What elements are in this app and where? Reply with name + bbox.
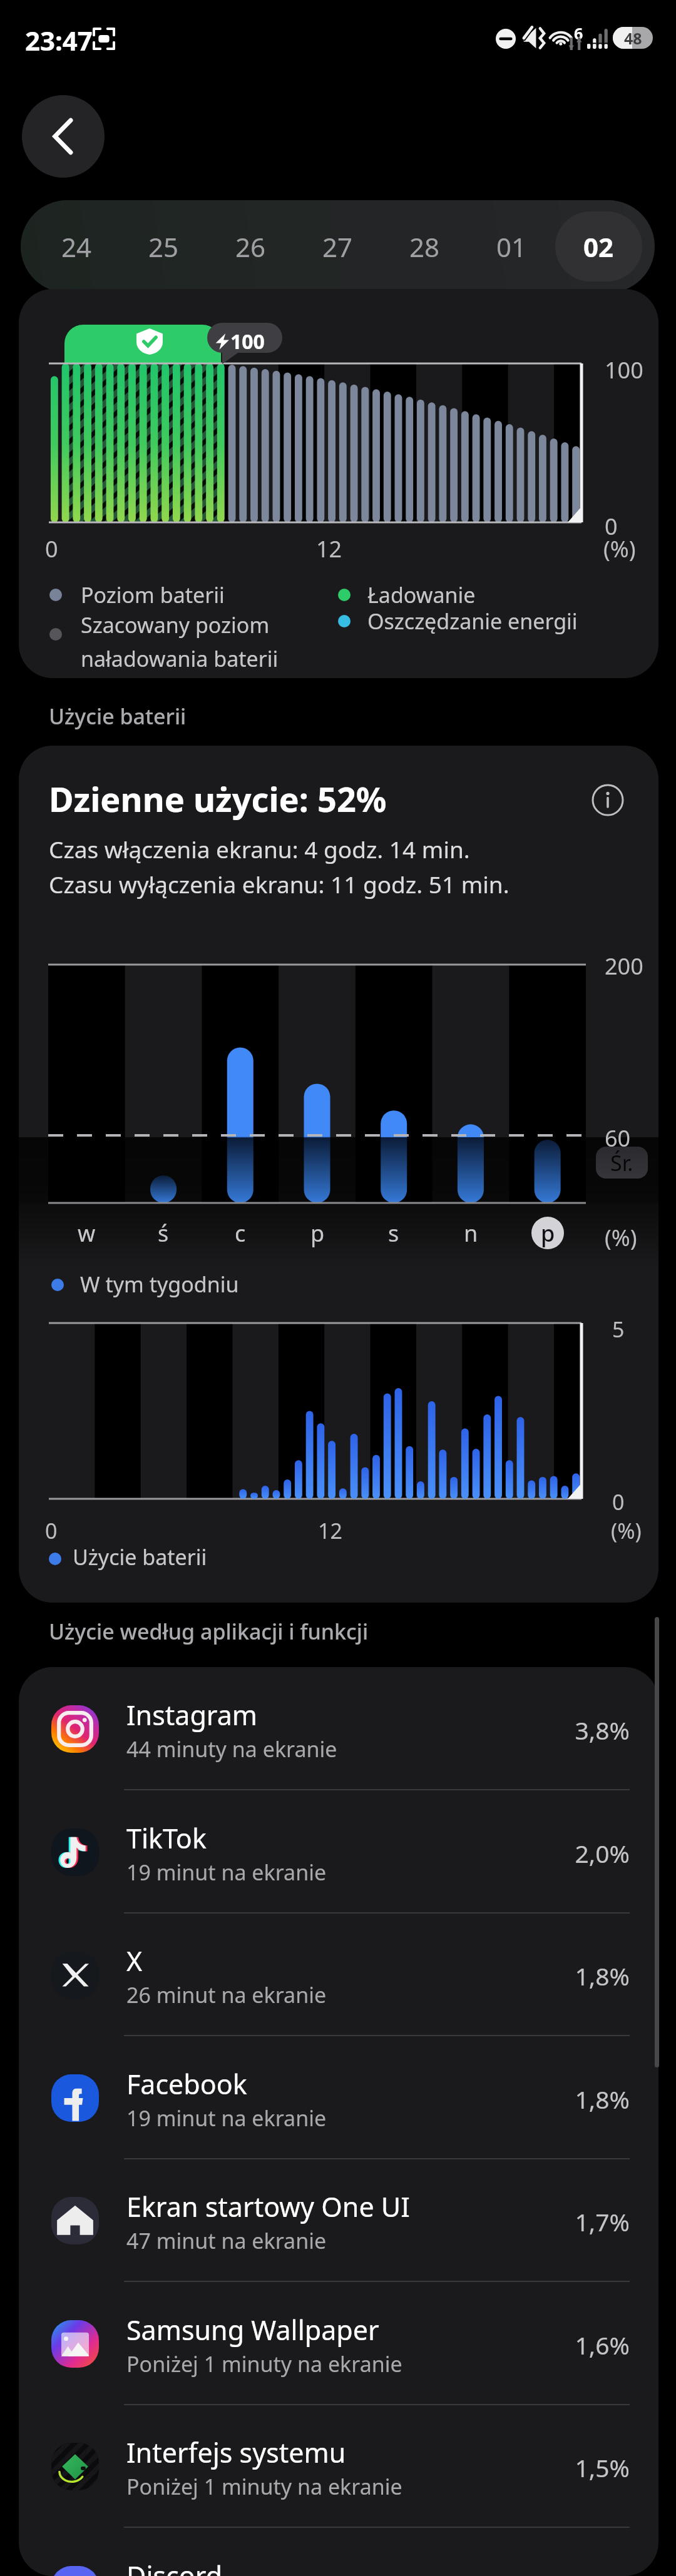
button[interactable]: 26 xyxy=(207,211,294,281)
button[interactable]: 24 xyxy=(33,211,120,281)
staticText: Oszczędzanie energii xyxy=(367,607,578,636)
button[interactable]: 25 xyxy=(120,211,207,281)
staticText: X xyxy=(126,1942,143,1979)
staticText: 1,7% xyxy=(513,2205,630,2238)
staticText: 28 xyxy=(409,229,440,265)
button[interactable]: Ekran startowy One UI xyxy=(19,2159,658,2282)
staticText: w xyxy=(78,1218,96,1249)
staticText: 100 xyxy=(605,355,643,385)
staticText: 01 xyxy=(496,229,527,265)
staticText: 0 xyxy=(612,1488,625,1516)
staticText: 25 xyxy=(148,229,179,265)
staticText: ś xyxy=(158,1218,169,1249)
staticText: Czas włączenia ekranu: 4 godz. 14 min. xyxy=(49,833,470,865)
staticText: 3,8% xyxy=(513,1713,630,1747)
button[interactable]: 28 xyxy=(381,211,468,281)
staticText: W tym tygodniu xyxy=(80,1270,239,1299)
staticText: p xyxy=(541,1218,555,1249)
staticText: 5 xyxy=(612,1315,625,1344)
staticText: Poniżej 1 minuty na ekranie xyxy=(126,2472,402,2501)
staticText: Discord xyxy=(126,2557,223,2576)
staticText: Instagram xyxy=(126,1696,258,1733)
staticText: 27 xyxy=(322,229,353,265)
button[interactable]: Interfejs systemu xyxy=(19,2405,658,2528)
button[interactable]: TikTok xyxy=(19,1790,658,1914)
staticText: TikTok xyxy=(126,1820,207,1857)
staticText: 12 xyxy=(316,534,342,564)
staticText: 19 minut na ekranie xyxy=(126,1858,327,1887)
staticText: Poziom baterii xyxy=(81,581,225,609)
staticText: Poniżej 1 minuty na ekranie xyxy=(126,2350,402,2378)
button[interactable]: 01 xyxy=(468,211,555,281)
staticText: (%) xyxy=(603,534,636,564)
button[interactable]: Wstecz xyxy=(22,95,105,178)
staticText: 1,6% xyxy=(513,2328,630,2361)
staticText: 0 xyxy=(45,1516,58,1545)
staticText: 0 xyxy=(45,534,58,564)
staticText: 24 xyxy=(61,229,92,265)
button[interactable]: Samsung Wallpaper xyxy=(19,2282,658,2405)
staticText: Użycie baterii xyxy=(73,1543,207,1571)
button[interactable]: Discord xyxy=(19,2528,658,2576)
staticText: 12 xyxy=(318,1516,342,1545)
staticText: 2,0% xyxy=(513,1837,630,1870)
staticText: s xyxy=(388,1218,399,1249)
staticText: Czasu wyłączenia ekranu: 11 godz. 51 min… xyxy=(49,868,510,900)
staticText: 47 minut na ekranie xyxy=(126,2226,327,2255)
staticText: 6 xyxy=(574,23,583,44)
staticText: Facebook xyxy=(126,2066,247,2102)
staticText: 1,8% xyxy=(513,2082,630,2116)
staticText: Interfejs systemu xyxy=(126,2434,346,2471)
button[interactable]: Informacje xyxy=(587,779,628,821)
staticText: (%) xyxy=(611,1516,642,1545)
staticText: n xyxy=(464,1218,478,1249)
staticText: c xyxy=(235,1218,246,1249)
button[interactable]: X xyxy=(19,1913,658,2036)
button[interactable]: 27 xyxy=(294,211,381,281)
staticText: Użycie według aplikacji i funkcji xyxy=(49,1617,369,1646)
staticText: 19 minut na ekranie xyxy=(126,2104,327,2132)
staticText: 26 minut na ekranie xyxy=(126,1980,327,2009)
staticText: 200 xyxy=(605,951,643,981)
staticText: Dzienne użycie: 52% xyxy=(49,776,387,822)
staticText: 1,8% xyxy=(513,1959,630,1992)
staticText: 100 xyxy=(230,328,265,355)
staticText: 0 xyxy=(605,511,618,542)
staticText: Ładowanie xyxy=(367,581,476,609)
staticText: 1,5% xyxy=(513,2451,630,2484)
staticText: Szacowany poziom naładowania baterii xyxy=(81,611,279,673)
staticText: 23:47 xyxy=(25,23,93,58)
staticText: Śr. xyxy=(610,1149,633,1177)
staticText: Użycie baterii xyxy=(49,702,187,731)
staticText: 26 xyxy=(235,229,266,265)
staticText: 02 xyxy=(583,229,614,265)
staticText: 48 xyxy=(624,28,642,49)
staticText: Ekran startowy One UI xyxy=(126,2188,410,2225)
button[interactable]: Instagram xyxy=(19,1667,658,1790)
button[interactable]: Facebook xyxy=(19,2036,658,2159)
button[interactable]: p xyxy=(531,1217,564,1249)
staticText: (%) xyxy=(605,1222,637,1253)
staticText: 60 xyxy=(605,1123,631,1154)
button[interactable]: 02 xyxy=(555,211,642,281)
staticText: p xyxy=(310,1218,325,1249)
staticText: 44 minuty na ekranie xyxy=(126,1735,337,1763)
staticText: Samsung Wallpaper xyxy=(126,2311,379,2348)
